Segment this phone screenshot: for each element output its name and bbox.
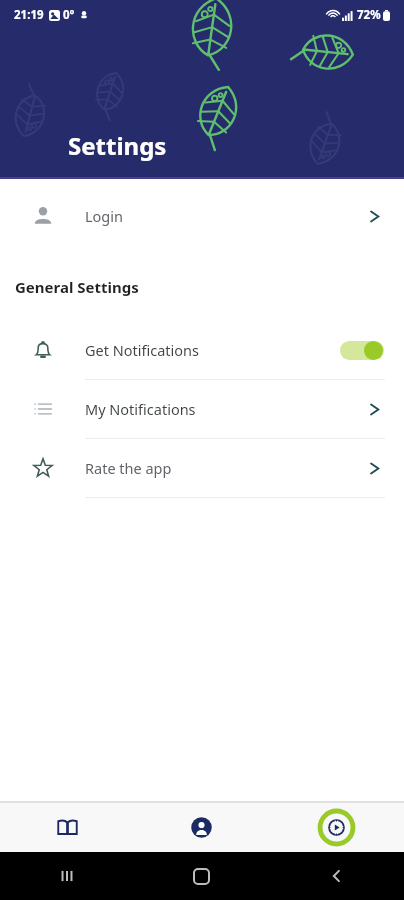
button[interactable]: My Notifications [0,380,404,439]
button[interactable]: Account [134,803,269,852]
staticText: 21:19 [14,7,44,23]
button[interactable] [340,341,384,360]
button[interactable]: Library [0,803,134,852]
staticText: Settings [68,129,167,162]
staticText: General Settings [15,277,139,297]
button[interactable]: Login [0,187,404,245]
button[interactable]: Get Notifications [0,321,404,380]
staticText: 0° [63,7,75,23]
staticText: 72% [357,7,381,23]
staticText: Rate the app [85,458,365,478]
staticText: Login [85,206,365,226]
staticText: My Notifications [85,399,365,419]
button[interactable]: Settings [269,803,404,852]
button[interactable]: Rate the app [0,439,404,498]
staticText: Get Notifications [85,340,340,360]
